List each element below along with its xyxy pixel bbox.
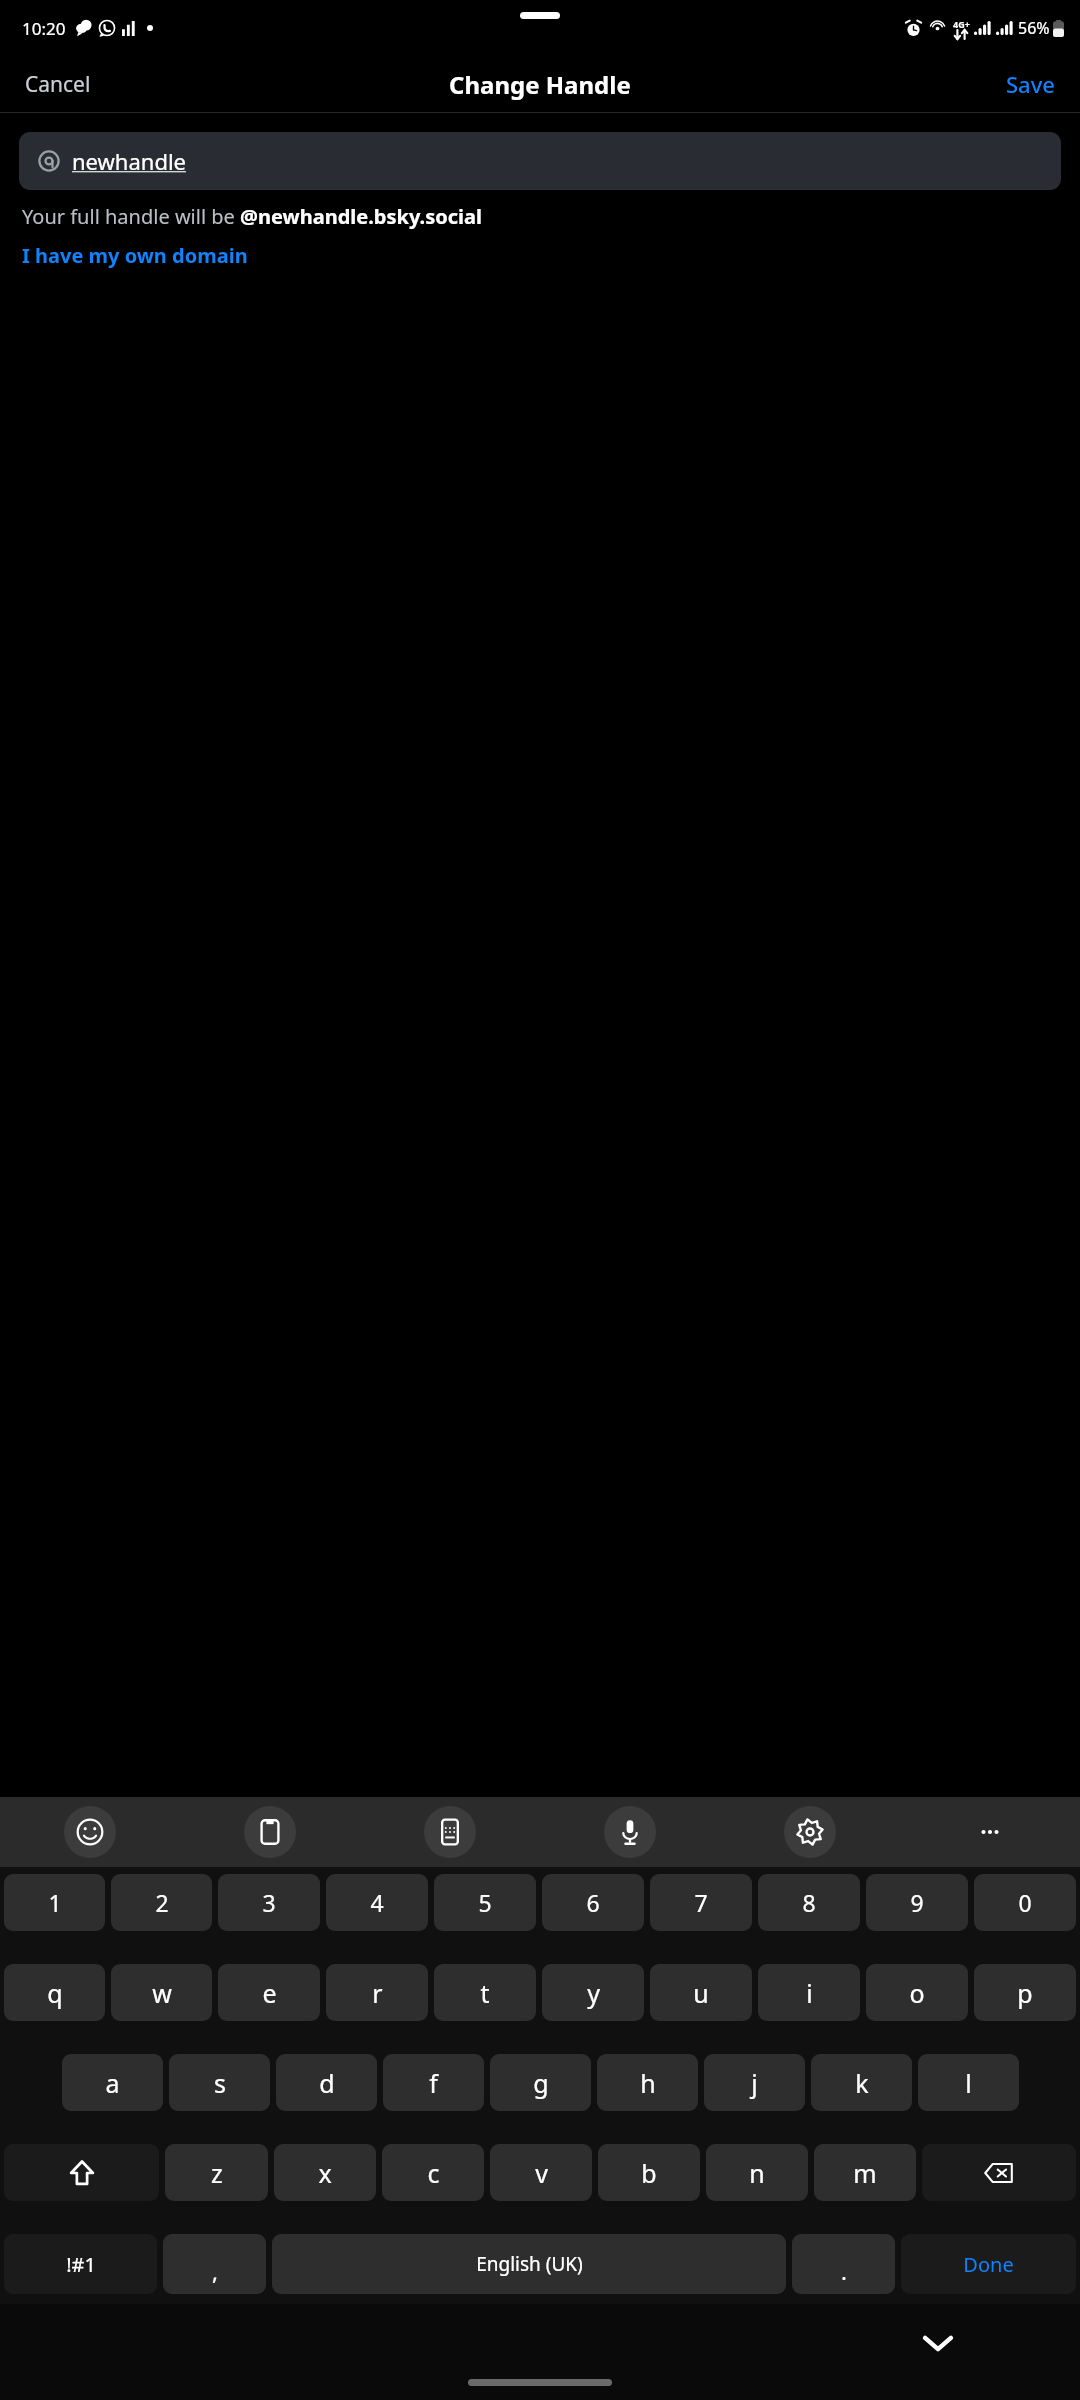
button[interactable]: x — [274, 2144, 376, 2201]
button[interactable]: 1 — [4, 1874, 105, 1931]
button[interactable]: 8 — [758, 1874, 860, 1931]
button[interactable]: Shift — [4, 2144, 159, 2201]
staticText: , — [212, 2256, 218, 2286]
button[interactable]: 6 — [542, 1874, 644, 1931]
button[interactable]: Backspace — [922, 2144, 1076, 2201]
button[interactable]: u — [650, 1964, 752, 2021]
button[interactable]: , — [163, 2234, 266, 2294]
button[interactable]: a — [62, 2054, 163, 2111]
button[interactable]: 4 — [326, 1874, 428, 1931]
staticText: h — [640, 2066, 656, 2100]
button[interactable]: . — [792, 2234, 895, 2294]
button[interactable]: Clipboard — [244, 1806, 296, 1858]
staticText: b — [641, 2156, 657, 2190]
button[interactable]: s — [169, 2054, 270, 2111]
staticText: x — [318, 2156, 332, 2190]
staticText: g — [533, 2066, 549, 2100]
staticText: 9 — [910, 1887, 924, 1918]
staticText: q — [47, 1976, 63, 2010]
button[interactable]: b — [598, 2144, 700, 2201]
button[interactable]: z — [165, 2144, 268, 2201]
staticText: 2 — [155, 1887, 169, 1918]
button[interactable]: More options — [964, 1806, 1016, 1858]
staticText: j — [751, 2066, 758, 2100]
staticText: o — [909, 1976, 925, 2010]
button[interactable]: Done — [901, 2234, 1076, 2294]
staticText: 5 — [478, 1887, 492, 1918]
staticText: p — [1017, 1976, 1033, 2010]
staticText: English (UK) — [476, 2251, 583, 2277]
staticText: 7 — [694, 1887, 708, 1918]
button[interactable]: 3 — [218, 1874, 320, 1931]
button[interactable]: t — [434, 1964, 536, 2021]
staticText: y — [587, 1976, 600, 2010]
button[interactable]: 5 — [434, 1874, 536, 1931]
staticText: e — [262, 1976, 277, 2010]
button[interactable]: 2 — [111, 1874, 212, 1931]
button[interactable]: n — [706, 2144, 808, 2201]
button[interactable]: f — [383, 2054, 484, 2111]
button[interactable]: d — [276, 2054, 377, 2111]
button[interactable]: Voice input — [604, 1806, 656, 1858]
staticText: Done — [963, 2251, 1014, 2278]
button[interactable]: 9 — [866, 1874, 968, 1931]
staticText: 10:20 — [22, 17, 66, 40]
staticText: 8 — [802, 1887, 816, 1918]
button[interactable]: l — [918, 2054, 1019, 2111]
button[interactable]: I have my own domain — [22, 242, 248, 269]
staticText: I have my own domain — [22, 242, 248, 269]
staticText: 6 — [586, 1887, 600, 1918]
button[interactable]: Hide keyboard — [914, 2319, 962, 2367]
button[interactable]: h — [597, 2054, 698, 2111]
button[interactable]: m — [814, 2144, 916, 2201]
staticText: l — [965, 2066, 972, 2100]
staticText: i — [806, 1976, 813, 2010]
button[interactable]: c — [382, 2144, 484, 2201]
staticText: newhandle — [72, 146, 187, 176]
staticText: f — [429, 2066, 438, 2100]
button[interactable]: Save — [981, 61, 1080, 107]
staticText: 3 — [262, 1887, 276, 1918]
staticText: u — [693, 1976, 709, 2010]
staticText: 4G+ — [953, 18, 970, 30]
button[interactable]: 7 — [650, 1874, 752, 1931]
staticText: !#1 — [66, 2251, 96, 2278]
button[interactable]: Cancel — [0, 62, 116, 107]
button[interactable]: 0 — [974, 1874, 1076, 1931]
staticText: Change Handle — [449, 68, 631, 101]
button[interactable]: !#1 — [4, 2234, 157, 2294]
staticText: 0 — [1018, 1887, 1032, 1918]
staticText: m — [853, 2156, 877, 2190]
button[interactable]: Keyboard layout — [424, 1806, 476, 1858]
button[interactable]: r — [326, 1964, 428, 2021]
button[interactable]: w — [111, 1964, 212, 2021]
staticText: t — [480, 1976, 490, 2010]
button[interactable]: o — [866, 1964, 968, 2021]
staticText: n — [749, 2156, 765, 2190]
staticText: k — [855, 2066, 869, 2100]
button[interactable]: g — [490, 2054, 591, 2111]
staticText: r — [372, 1976, 383, 2010]
button[interactable]: e — [218, 1964, 320, 2021]
staticText: 1 — [48, 1887, 62, 1918]
button[interactable]: q — [4, 1964, 105, 2021]
button[interactable]: i — [758, 1964, 860, 2021]
staticText: 4 — [370, 1887, 384, 1918]
button[interactable]: Settings — [784, 1806, 836, 1858]
staticText: . — [841, 2256, 847, 2286]
staticText: Cancel — [25, 70, 91, 99]
staticText: v — [535, 2156, 548, 2190]
staticText: z — [211, 2156, 223, 2190]
staticText: s — [214, 2066, 226, 2100]
button[interactable]: newhandle — [19, 132, 1061, 190]
button[interactable]: English (UK) — [272, 2234, 786, 2294]
button[interactable]: p — [974, 1964, 1076, 2021]
staticText: c — [427, 2156, 440, 2190]
button[interactable]: Emoji — [64, 1806, 116, 1858]
staticText: a — [105, 2066, 120, 2100]
button[interactable]: v — [490, 2144, 592, 2201]
button[interactable]: k — [811, 2054, 912, 2111]
button[interactable]: y — [542, 1964, 644, 2021]
staticText: 56% — [1018, 17, 1050, 39]
button[interactable]: j — [704, 2054, 805, 2111]
